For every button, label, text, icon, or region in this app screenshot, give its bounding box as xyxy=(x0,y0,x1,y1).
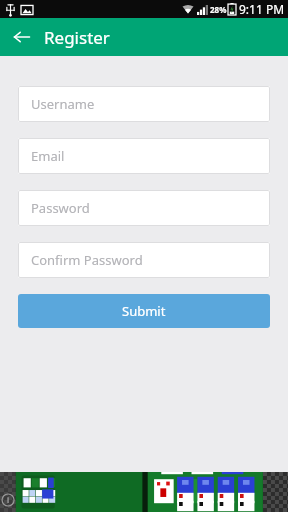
staticText: Confirm Password xyxy=(31,251,143,269)
button[interactable]: Username xyxy=(18,86,270,122)
button[interactable]: Solitaire advertisement xyxy=(0,472,288,512)
button[interactable]: Confirm Password xyxy=(18,242,270,278)
button[interactable]: Password xyxy=(18,190,270,226)
staticText: Username xyxy=(31,95,95,113)
button[interactable]: Submit xyxy=(18,294,270,328)
staticText: 28% xyxy=(210,4,227,15)
button[interactable]: Back xyxy=(6,21,38,53)
staticText: Password xyxy=(31,199,90,217)
staticText: Register xyxy=(44,26,110,49)
button[interactable]: Email xyxy=(18,138,270,174)
staticText: 9:11 PM xyxy=(239,1,285,17)
staticText: Submit xyxy=(122,302,166,320)
staticText: Email xyxy=(31,147,65,165)
